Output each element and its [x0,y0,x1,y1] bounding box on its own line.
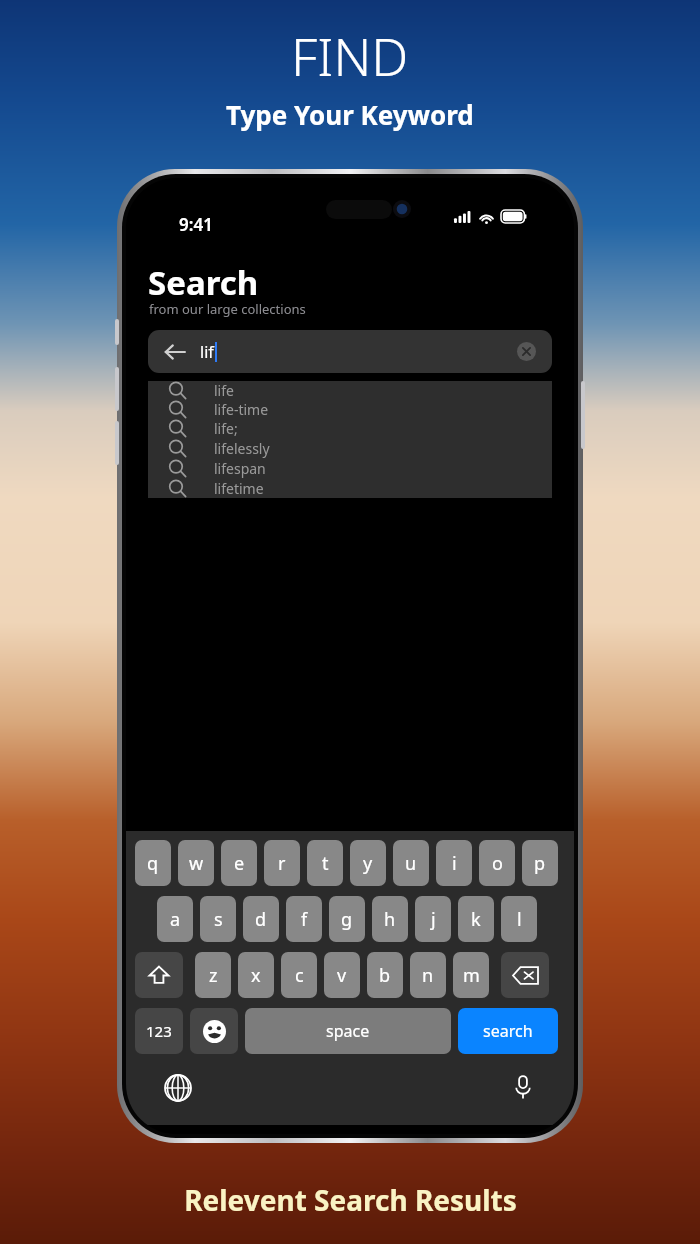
staticText: a [170,907,181,932]
staticText: life-time [214,400,269,419]
button[interactable]: Shift [135,952,183,998]
staticText: i [452,851,457,876]
staticText: lifespan [214,459,266,478]
staticText: s [214,907,223,932]
button[interactable]: k [458,896,494,942]
button[interactable]: j [415,896,451,942]
staticText: p [534,851,546,876]
staticText: k [471,907,481,932]
staticText: lifetime [214,479,264,498]
staticText: j [431,907,436,932]
staticText: search [483,1020,533,1042]
button[interactable]: q [135,840,171,886]
button[interactable]: w [178,840,214,886]
button[interactable]: search [458,1008,558,1054]
staticText: x [251,963,261,988]
button[interactable]: Voice input [510,1074,536,1100]
staticText: 9:41 [179,213,213,236]
staticText: e [234,851,245,876]
staticText: o [492,851,503,876]
button[interactable]: 123 [135,1008,183,1054]
button[interactable]: life [148,381,552,400]
button[interactable]: s [200,896,236,942]
other: Back [164,341,186,363]
button[interactable]: h [372,896,408,942]
button[interactable]: Emoji [190,1008,238,1054]
staticText: lif [200,341,214,363]
staticText: space [326,1020,370,1042]
staticText: g [341,907,353,932]
staticText: Relevent Search Results [184,1181,517,1219]
button[interactable]: v [324,952,360,998]
staticText: FIND [291,20,409,91]
button[interactable]: space [245,1008,451,1054]
button[interactable]: m [453,952,489,998]
button[interactable]: x [238,952,274,998]
staticText: l [517,907,522,932]
button[interactable]: i [436,840,472,886]
button[interactable]: y [350,840,386,886]
staticText: from our large collections [149,300,306,318]
button[interactable]: t [307,840,343,886]
staticText: life [214,381,234,400]
button[interactable]: z [195,952,231,998]
staticText: Search [148,260,259,305]
button[interactable]: life; [148,419,552,438]
button[interactable]: lifespan [148,458,552,478]
staticText: v [337,963,347,988]
button[interactable]: n [410,952,446,998]
staticText: life; [214,419,238,438]
staticText: t [322,851,329,876]
button[interactable]: lifetime [148,478,552,498]
staticText: m [463,963,480,988]
staticText: h [384,907,396,932]
button[interactable]: p [522,840,558,886]
button[interactable]: Backspace [501,952,549,998]
button[interactable]: a [157,896,193,942]
button[interactable]: g [329,896,365,942]
button[interactable]: b [367,952,403,998]
staticText: b [379,963,391,988]
staticText: q [147,851,159,876]
button[interactable]: c [281,952,317,998]
other: Clear [517,342,536,361]
staticText: y [363,851,373,876]
staticText: c [295,963,304,988]
button[interactable]: e [221,840,257,886]
button[interactable]: d [243,896,279,942]
button[interactable]: life-time [148,400,552,419]
button[interactable]: u [393,840,429,886]
button[interactable]: r [264,840,300,886]
staticText: lifelessly [214,439,270,458]
button[interactable]: Back [148,330,552,373]
staticText: r [278,851,286,876]
button[interactable]: l [501,896,537,942]
staticText: f [301,907,308,932]
staticText: 123 [146,1021,172,1041]
button[interactable]: lifelessly [148,438,552,458]
staticText: Type Your Keyword [226,97,474,132]
staticText: z [209,963,218,988]
staticText: d [255,907,267,932]
staticText: w [189,851,204,876]
button[interactable]: f [286,896,322,942]
staticText: n [422,963,434,988]
button[interactable]: o [479,840,515,886]
button[interactable]: Change keyboard [164,1074,192,1102]
staticText: u [405,851,417,876]
